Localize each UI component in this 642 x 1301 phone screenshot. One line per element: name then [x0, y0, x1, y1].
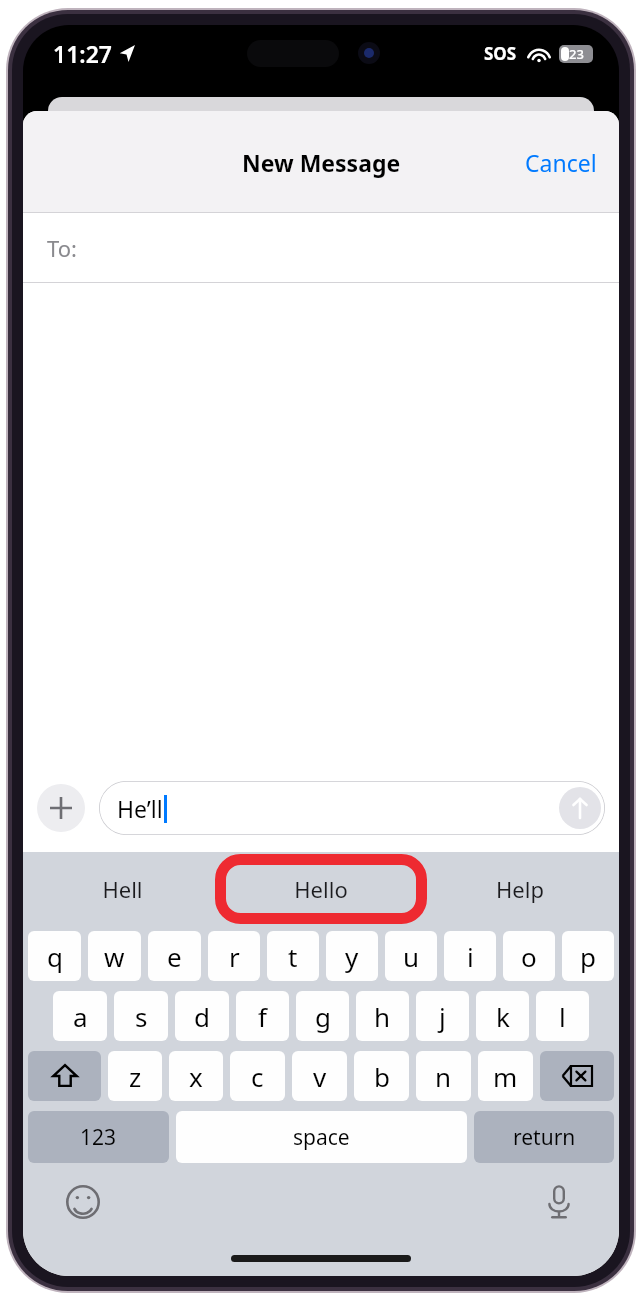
button[interactable]: q [28, 931, 81, 981]
button[interactable]: space [176, 1111, 467, 1163]
button[interactable]: p [562, 931, 614, 981]
button[interactable]: 123 [28, 1111, 169, 1163]
button[interactable]: t [267, 931, 319, 981]
staticText: 11:27 [53, 38, 112, 69]
staticText: a [73, 999, 88, 1034]
button[interactable]: b [354, 1051, 409, 1101]
staticText: z [129, 1059, 142, 1094]
button[interactable]: f [236, 991, 289, 1041]
staticText: e [167, 939, 182, 974]
button[interactable]: To: [23, 213, 619, 283]
staticText: o [521, 939, 537, 974]
staticText: Help [496, 874, 544, 904]
staticText: g [315, 999, 331, 1034]
staticText: c [251, 1059, 264, 1094]
button[interactable]: Emoji [63, 1182, 103, 1222]
staticText: p [580, 939, 596, 974]
button[interactable]: Backspace [540, 1051, 614, 1101]
staticText: i [467, 939, 474, 974]
staticText: b [374, 1059, 390, 1094]
staticText: u [403, 939, 420, 974]
button[interactable]: r [208, 931, 260, 981]
button[interactable]: m [478, 1051, 533, 1101]
button[interactable]: z [108, 1051, 162, 1101]
button[interactable]: Add attachment [37, 784, 85, 832]
staticText: He’ll [117, 793, 163, 824]
staticText: v [313, 1059, 327, 1094]
staticText: f [258, 999, 267, 1034]
button[interactable]: y [326, 931, 378, 981]
staticText: Hello [294, 874, 348, 904]
staticText: s [135, 999, 148, 1034]
staticText: m [493, 1059, 518, 1094]
button[interactable]: return [474, 1111, 614, 1163]
staticText: w [104, 939, 125, 974]
staticText: y [345, 939, 359, 974]
staticText: space [293, 1123, 350, 1152]
button[interactable]: d [175, 991, 229, 1041]
staticText: l [559, 999, 566, 1034]
staticText: To: [47, 233, 77, 263]
button[interactable]: Dictate [539, 1182, 579, 1222]
button[interactable]: j [416, 991, 469, 1041]
button[interactable]: Hell [23, 852, 221, 926]
staticText: j [439, 999, 446, 1034]
button[interactable]: He’ll [99, 781, 605, 835]
button[interactable]: Shift [28, 1051, 101, 1101]
button[interactable]: Cancel [503, 133, 619, 192]
button[interactable]: w [88, 931, 141, 981]
button[interactable]: e [148, 931, 201, 981]
staticText: q [47, 939, 63, 974]
staticText: New Message [242, 147, 401, 178]
button[interactable]: s [114, 991, 168, 1041]
button[interactable]: k [476, 991, 529, 1041]
button[interactable]: l [536, 991, 589, 1041]
button[interactable]: Hello [221, 852, 420, 926]
button[interactable]: o [503, 931, 555, 981]
staticText: k [496, 999, 510, 1034]
staticText: d [194, 999, 210, 1034]
button[interactable]: v [292, 1051, 347, 1101]
button[interactable]: i [444, 931, 496, 981]
staticText: t [288, 939, 298, 974]
staticText: n [435, 1059, 452, 1094]
staticText: return [513, 1123, 576, 1152]
staticText: 123 [80, 1123, 117, 1152]
button[interactable]: x [169, 1051, 223, 1101]
button[interactable]: u [385, 931, 437, 981]
staticText: x [189, 1059, 203, 1094]
button[interactable]: n [416, 1051, 471, 1101]
button[interactable]: Send [559, 787, 601, 829]
button[interactable]: a [53, 991, 107, 1041]
button[interactable]: g [296, 991, 349, 1041]
staticText: Cancel [525, 147, 597, 178]
staticText: SOS [484, 42, 517, 65]
button[interactable]: h [356, 991, 409, 1041]
staticText: r [229, 939, 240, 974]
staticText: Hell [102, 874, 143, 904]
staticText: 23 [569, 45, 584, 63]
staticText: h [374, 999, 391, 1034]
button[interactable]: Help [420, 852, 619, 926]
button[interactable]: c [230, 1051, 285, 1101]
